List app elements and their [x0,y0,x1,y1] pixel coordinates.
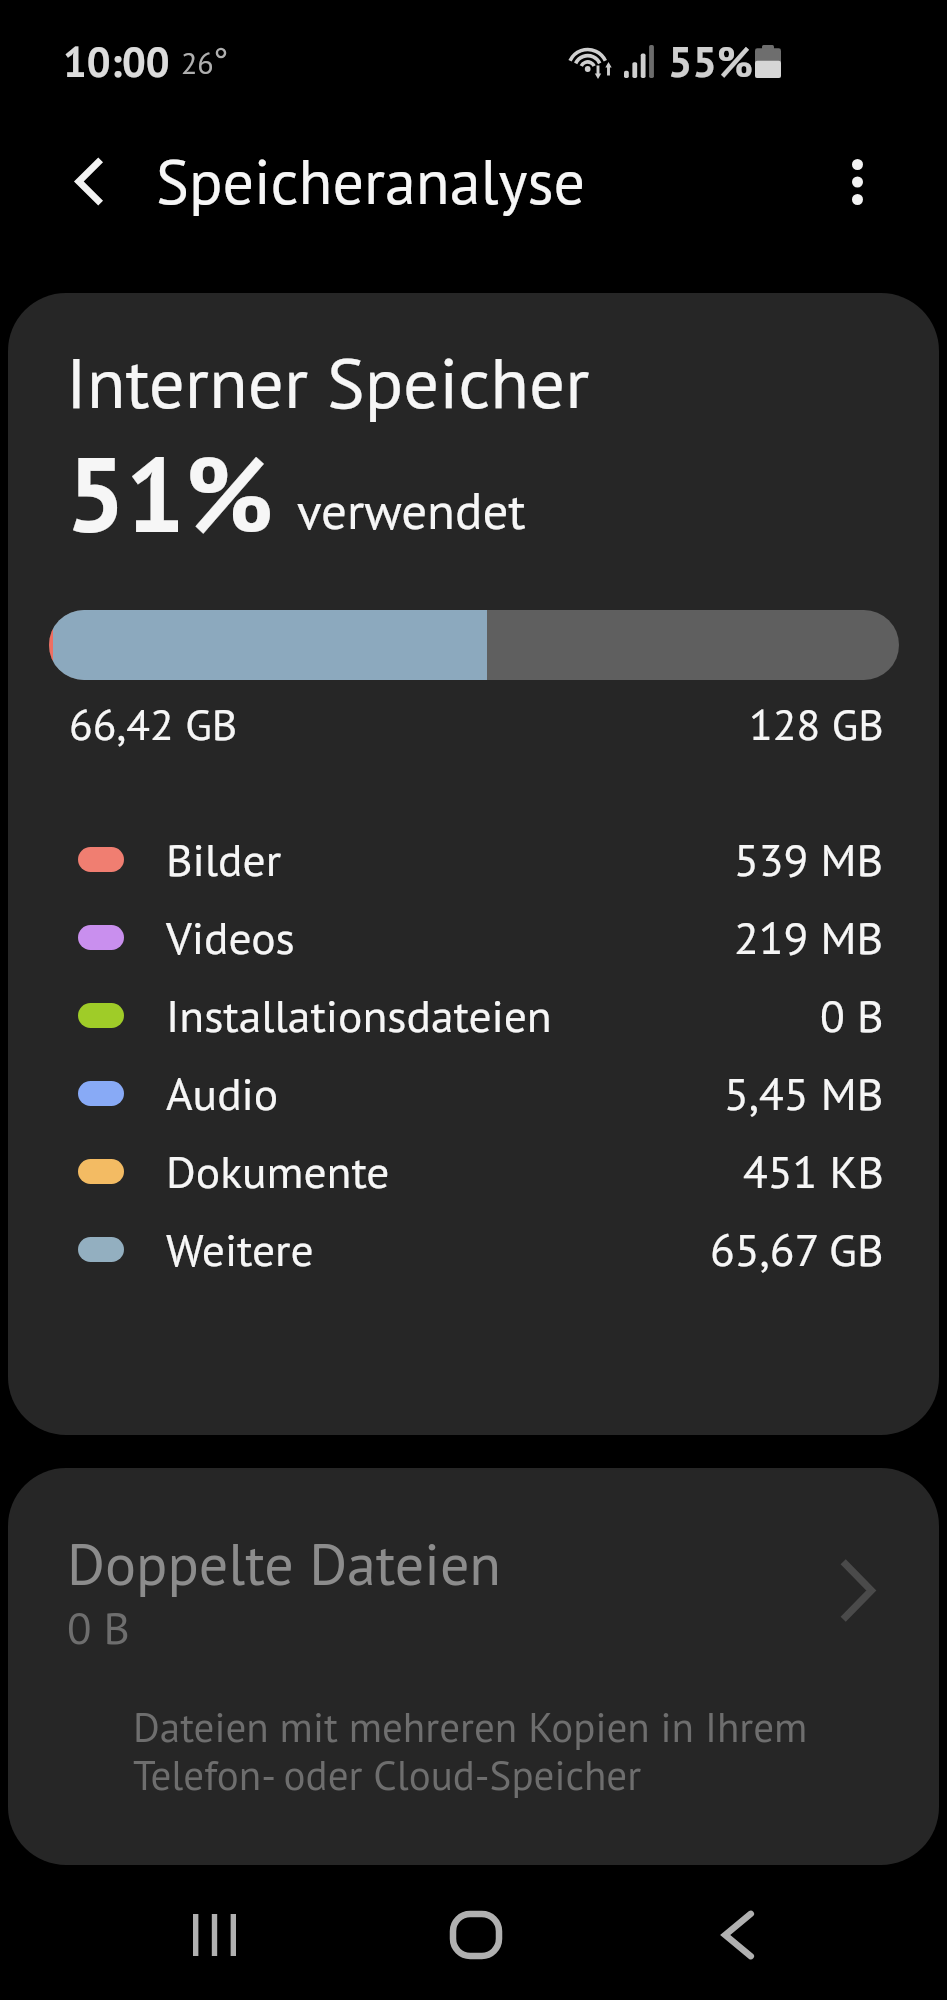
staticText: 219 MB [734,908,884,967]
button[interactable]: Weitere Optionen [805,130,909,234]
button[interactable]: Letzte Apps [149,1870,279,2000]
staticText: 128 GB [749,696,884,752]
staticText: Videos [166,908,295,967]
staticText: 66,42 GB [69,696,238,752]
staticText: Speicheranalyse [156,141,586,221]
button[interactable]: Zurück [673,1870,803,2000]
staticText: 10:00 [63,34,170,88]
button[interactable]: Doppelte Dateien [8,1468,939,1865]
staticText: 451 KB [743,1142,884,1201]
staticText: Interner Speicher [66,336,590,428]
staticText: Doppelte Dateien [67,1526,502,1601]
staticText: Dokumente [166,1142,390,1201]
staticText: 0 B [67,1598,130,1656]
staticText: verwendet [297,477,526,543]
staticText: 5,45 MB [724,1064,884,1123]
staticText: Dateien mit mehreren Kopien in Ihrem Tel… [133,1700,808,1801]
staticText: 55% [668,33,753,89]
staticText: Installationsdateien [166,986,552,1045]
staticText: 539 MB [734,830,884,889]
staticText: 26 [181,43,214,82]
button[interactable]: Startbildschirm [411,1870,541,2000]
staticText: Weitere [166,1220,314,1279]
staticText: 0 B [820,986,884,1045]
staticText: 51% [66,425,274,561]
staticText: 65,67 GB [710,1220,884,1279]
button[interactable]: Zurück [38,129,142,233]
staticText: Audio [166,1064,279,1123]
staticText: Bilder [166,830,282,889]
